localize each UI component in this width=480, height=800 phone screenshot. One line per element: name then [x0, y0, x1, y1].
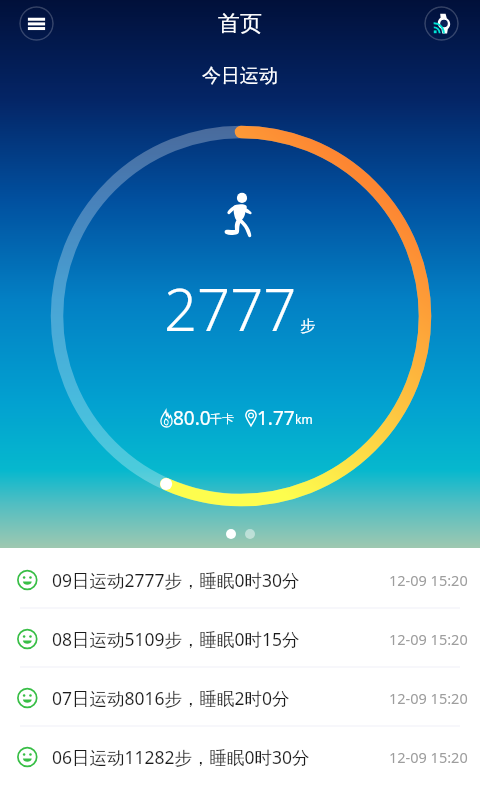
staticText: 09日运动2777步，睡眠0时30分	[52, 568, 300, 592]
button[interactable]: 09日运动2777步，睡眠0时30分	[0, 550, 480, 609]
staticText: 今日运动	[202, 64, 278, 88]
staticText: 12-09 15:20	[389, 688, 468, 708]
staticText: 12-09 15:20	[389, 629, 468, 649]
button[interactable]: Connect watch	[424, 6, 459, 41]
staticText: 步	[300, 317, 315, 336]
button[interactable]: Menu	[19, 6, 54, 41]
button[interactable]: 07日运动8016步，睡眠2时0分	[0, 668, 480, 727]
staticText: 12-09 15:20	[389, 570, 468, 590]
staticText: 2777	[164, 269, 297, 348]
button[interactable]: 06日运动11282步，睡眠0时30分	[0, 727, 480, 786]
staticText: km	[295, 411, 313, 427]
staticText: 06日运动11282步，睡眠0时30分	[52, 745, 310, 769]
staticText: 80.0	[173, 405, 211, 431]
staticText: 千卡	[210, 411, 234, 426]
staticText: 1.77	[257, 405, 295, 431]
staticText: 07日运动8016步，睡眠2时0分	[52, 686, 290, 710]
staticText: 12-09 15:20	[389, 747, 468, 767]
staticText: 首页	[218, 10, 262, 38]
button[interactable]: 08日运动5109步，睡眠0时15分	[0, 609, 480, 668]
staticText: 08日运动5109步，睡眠0时15分	[52, 627, 300, 651]
